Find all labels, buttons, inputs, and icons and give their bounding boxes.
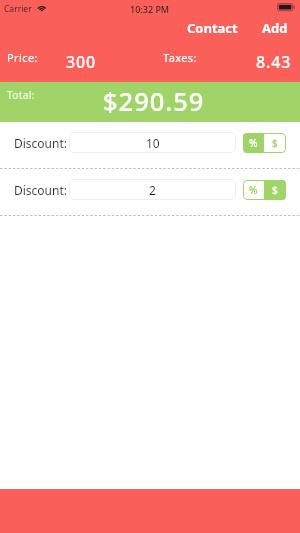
- staticText: $: [272, 183, 278, 197]
- staticText: 2: [149, 182, 156, 198]
- button[interactable]: Percent: [243, 133, 264, 153]
- staticText: 300: [66, 51, 97, 73]
- button[interactable]: Amount: [264, 180, 286, 200]
- staticText: Discount:: [14, 135, 68, 151]
- staticText: Taxes:: [163, 50, 197, 65]
- staticText: 8.43: [256, 51, 292, 73]
- button[interactable]: 2: [69, 179, 236, 200]
- staticText: 10: [146, 135, 160, 151]
- staticText: Add: [262, 19, 288, 37]
- staticText: %: [249, 183, 258, 197]
- staticText: $: [272, 136, 278, 150]
- staticText: Discount:: [14, 182, 68, 198]
- staticText: Price:: [7, 50, 38, 65]
- button[interactable]: 10: [69, 132, 236, 153]
- button[interactable]: Percent: [243, 180, 264, 200]
- staticText: Total:: [7, 88, 35, 102]
- staticText: Contact: [187, 19, 238, 37]
- button[interactable]: Contact: [182, 17, 243, 39]
- staticText: $290.59: [103, 84, 205, 119]
- staticText: 10:32 PM: [130, 3, 170, 15]
- button[interactable]: Add: [257, 17, 293, 39]
- staticText: Carrier: [4, 3, 32, 15]
- staticText: %: [249, 136, 258, 150]
- button[interactable]: Amount: [264, 133, 286, 153]
